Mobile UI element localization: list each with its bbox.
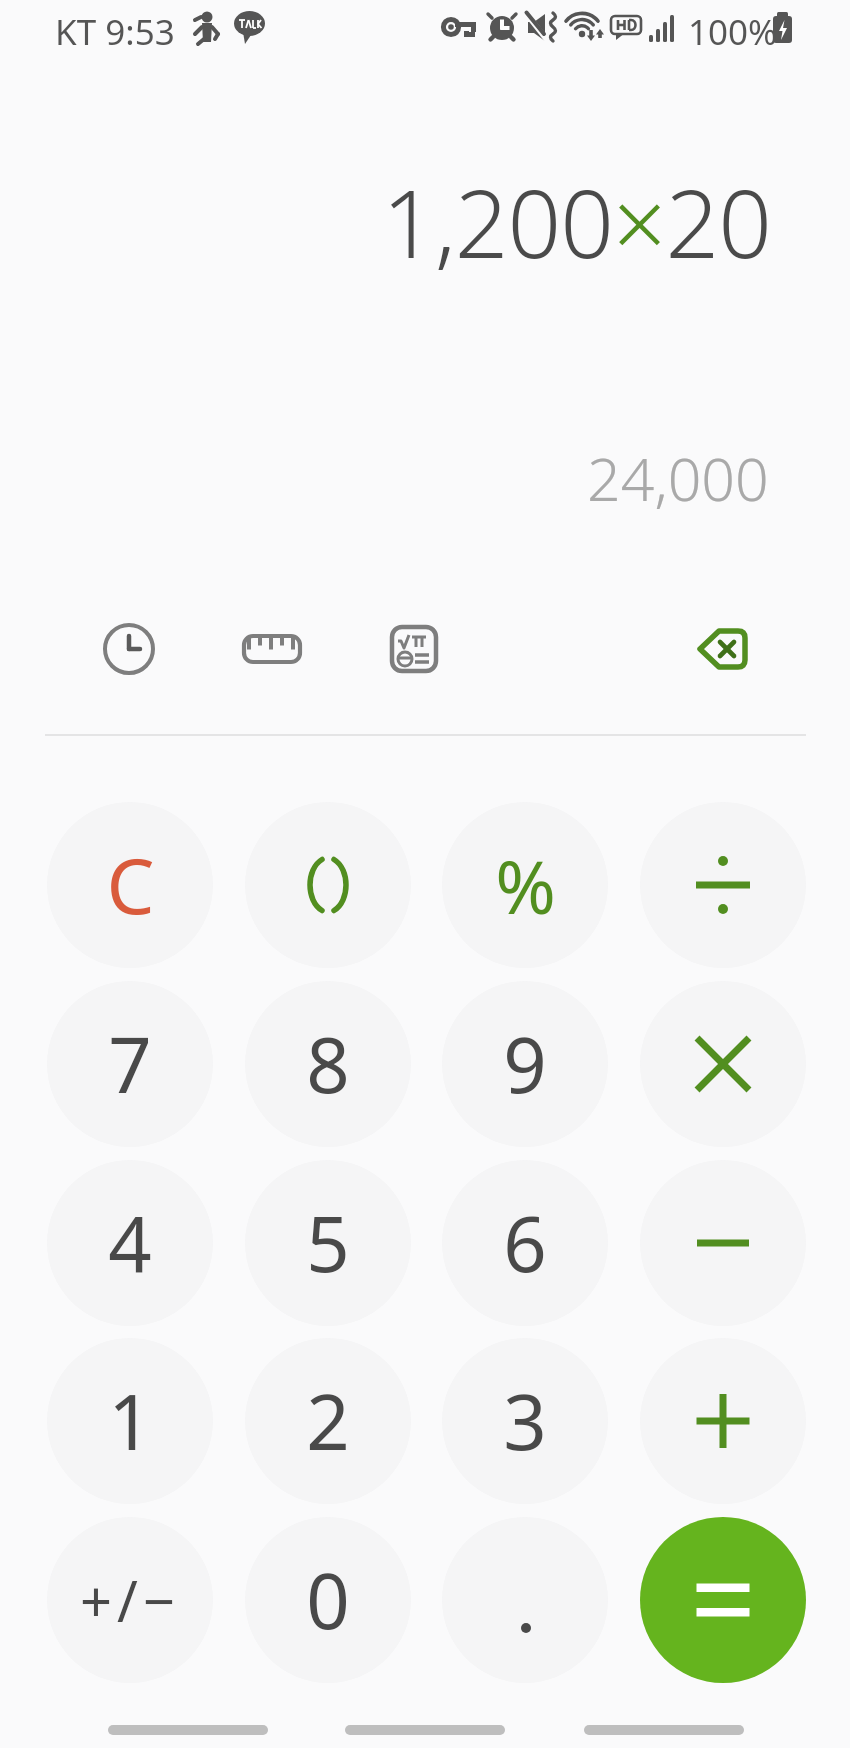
staticText: 2: [306, 1369, 350, 1473]
button[interactable]: Percent: [442, 802, 608, 968]
button[interactable]: Decimal point: [442, 1517, 608, 1683]
button[interactable]: Backspace: [670, 597, 774, 701]
staticText: C: [106, 833, 155, 937]
staticText: KT 9:53: [55, 8, 175, 56]
button[interactable]: History: [77, 597, 181, 701]
staticText: +/−: [80, 1562, 180, 1638]
button[interactable]: Recents: [108, 1725, 268, 1735]
button[interactable]: Unit converter: [220, 597, 324, 701]
button[interactable]: 8: [245, 981, 411, 1147]
button[interactable]: Parentheses: [245, 802, 411, 968]
staticText: 100%: [688, 8, 778, 56]
staticText: 1: [108, 1369, 152, 1473]
staticText: 0: [306, 1548, 350, 1652]
staticText: 7: [108, 1012, 152, 1116]
staticText: 3: [503, 1369, 547, 1473]
staticText: 4: [108, 1191, 152, 1295]
button[interactable]: 2: [245, 1338, 411, 1504]
button[interactable]: 9: [442, 981, 608, 1147]
button[interactable]: 5: [245, 1160, 411, 1326]
staticText: 8: [306, 1012, 350, 1116]
button[interactable]: Scientific calculator: [362, 597, 466, 701]
button[interactable]: Subtract: [640, 1160, 806, 1326]
button[interactable]: 1: [47, 1338, 213, 1504]
staticText: 24,000: [587, 438, 769, 518]
button[interactable]: Back: [584, 1725, 744, 1735]
button[interactable]: C: [47, 802, 213, 968]
staticText: 9: [503, 1012, 547, 1116]
button[interactable]: Add: [640, 1338, 806, 1504]
button[interactable]: Divide: [640, 802, 806, 968]
button[interactable]: Multiply: [640, 981, 806, 1147]
staticText: 5: [306, 1191, 350, 1295]
button[interactable]: 3: [442, 1338, 608, 1504]
staticText: %: [495, 836, 556, 935]
button[interactable]: Home: [345, 1725, 505, 1735]
button[interactable]: 7: [47, 981, 213, 1147]
staticText: 1,200×20: [382, 158, 771, 286]
button[interactable]: 4: [47, 1160, 213, 1326]
staticText: 6: [503, 1191, 547, 1295]
button[interactable]: 6: [442, 1160, 608, 1326]
button[interactable]: 0: [245, 1517, 411, 1683]
button[interactable]: Equals: [640, 1517, 806, 1683]
button[interactable]: Plus minus sign: [47, 1517, 213, 1683]
